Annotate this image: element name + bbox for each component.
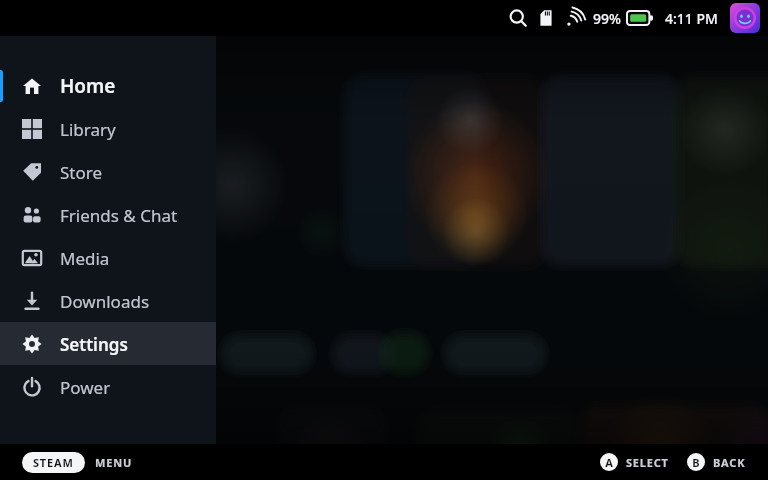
staticText: MENU [95, 455, 132, 470]
staticText: Power [60, 376, 111, 399]
staticText: Friends & Chat [60, 204, 178, 227]
button[interactable]: Store [0, 150, 216, 193]
staticText: BACK [713, 455, 746, 470]
button[interactable]: Search [503, 3, 533, 33]
button[interactable]: Settings [0, 322, 216, 365]
staticText: Media [60, 247, 110, 270]
staticText: Library [60, 118, 116, 141]
staticText: 4:11 PM [665, 9, 718, 28]
staticText: Store [60, 161, 103, 184]
button[interactable]: Downloads [0, 279, 216, 322]
button[interactable]: Friends & Chat [0, 193, 216, 236]
staticText: Downloads [60, 290, 150, 313]
staticText: Home [60, 73, 116, 99]
staticText: 99% [593, 9, 621, 28]
staticText: Settings [60, 333, 128, 356]
button[interactable]: A [600, 453, 669, 471]
button[interactable]: B [687, 453, 746, 471]
button[interactable]: Profile [730, 3, 760, 33]
button[interactable]: Media [0, 236, 216, 279]
staticText: STEAM [33, 455, 74, 470]
button[interactable]: Library [0, 107, 216, 150]
button[interactable]: Power [0, 365, 216, 408]
button[interactable]: STEAM [33, 455, 74, 470]
staticText: B [692, 455, 700, 470]
button[interactable]: Home [0, 64, 216, 107]
staticText: A [605, 455, 613, 470]
staticText: SELECT [626, 455, 669, 470]
